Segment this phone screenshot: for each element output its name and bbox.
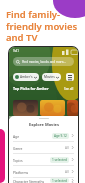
staticText: Explore Movies — [29, 122, 59, 127]
staticText: Amber's — [20, 75, 33, 79]
button[interactable]: Find movies, books and more... — [13, 57, 74, 66]
staticText: All — [65, 170, 69, 174]
staticText: Topics — [13, 158, 23, 162]
button[interactable]: Movie poster — [67, 100, 78, 116]
button[interactable]: Platforms — [9, 166, 78, 177]
staticText: See all — [64, 87, 74, 91]
staticText: All — [65, 146, 69, 150]
staticText: Genre — [13, 146, 23, 150]
staticText: Character Strengths — [13, 179, 44, 183]
staticText: Find family- friendly movies and TV — [6, 8, 78, 44]
button[interactable]: List view — [66, 73, 74, 81]
button[interactable]: See all — [64, 87, 74, 91]
button[interactable]: Age — [9, 130, 78, 141]
button[interactable]: Movies — [42, 73, 61, 81]
button[interactable]: Genre — [9, 142, 78, 153]
staticText: 9:41 — [13, 49, 19, 53]
staticText: Find movies, books and more... — [22, 60, 66, 64]
staticText: Top Picks for Amber — [13, 86, 49, 91]
staticText: 1 selected — [52, 158, 67, 162]
staticText: Platforms — [13, 170, 29, 174]
button[interactable]: Amber's — [13, 73, 39, 81]
staticText: Age 9-12 — [54, 134, 67, 138]
button[interactable]: Topics — [9, 154, 78, 165]
staticText: Movies — [44, 75, 55, 79]
button[interactable]: Movie poster — [40, 100, 65, 116]
button[interactable]: Movie poster — [13, 100, 38, 116]
button[interactable]: Character Strengths — [9, 178, 78, 183]
staticText: 1 selected — [52, 179, 67, 182]
staticText: Age — [13, 134, 19, 138]
